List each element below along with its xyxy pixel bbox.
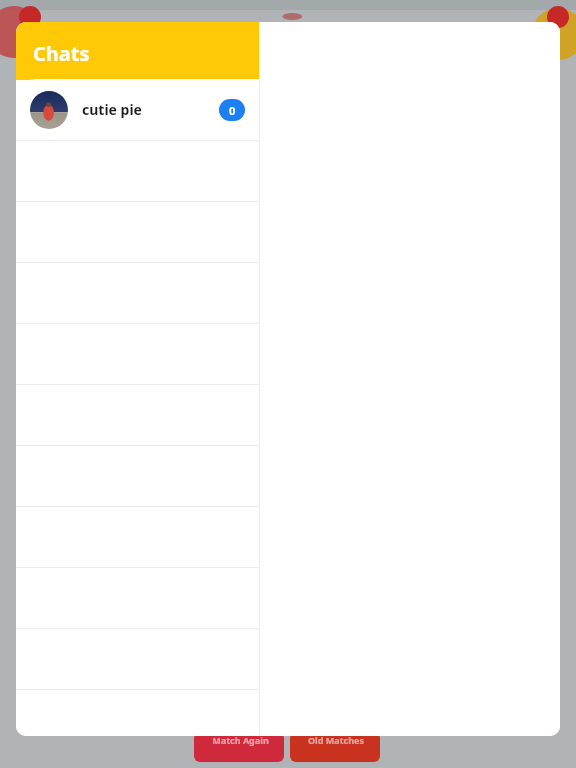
staticText: 0	[229, 103, 236, 118]
button[interactable]: Old Matches	[291, 734, 381, 746]
staticText: Chats	[33, 40, 90, 67]
button[interactable]: Match Again	[195, 734, 285, 746]
button[interactable]: cutie pie profile photo	[16, 79, 259, 140]
button[interactable]	[16, 690, 259, 736]
other: cutie pie profile photo	[30, 91, 68, 129]
staticText: Match Again	[212, 734, 269, 746]
staticText: Old Matches	[308, 734, 364, 746]
staticText: cutie pie	[82, 100, 142, 119]
